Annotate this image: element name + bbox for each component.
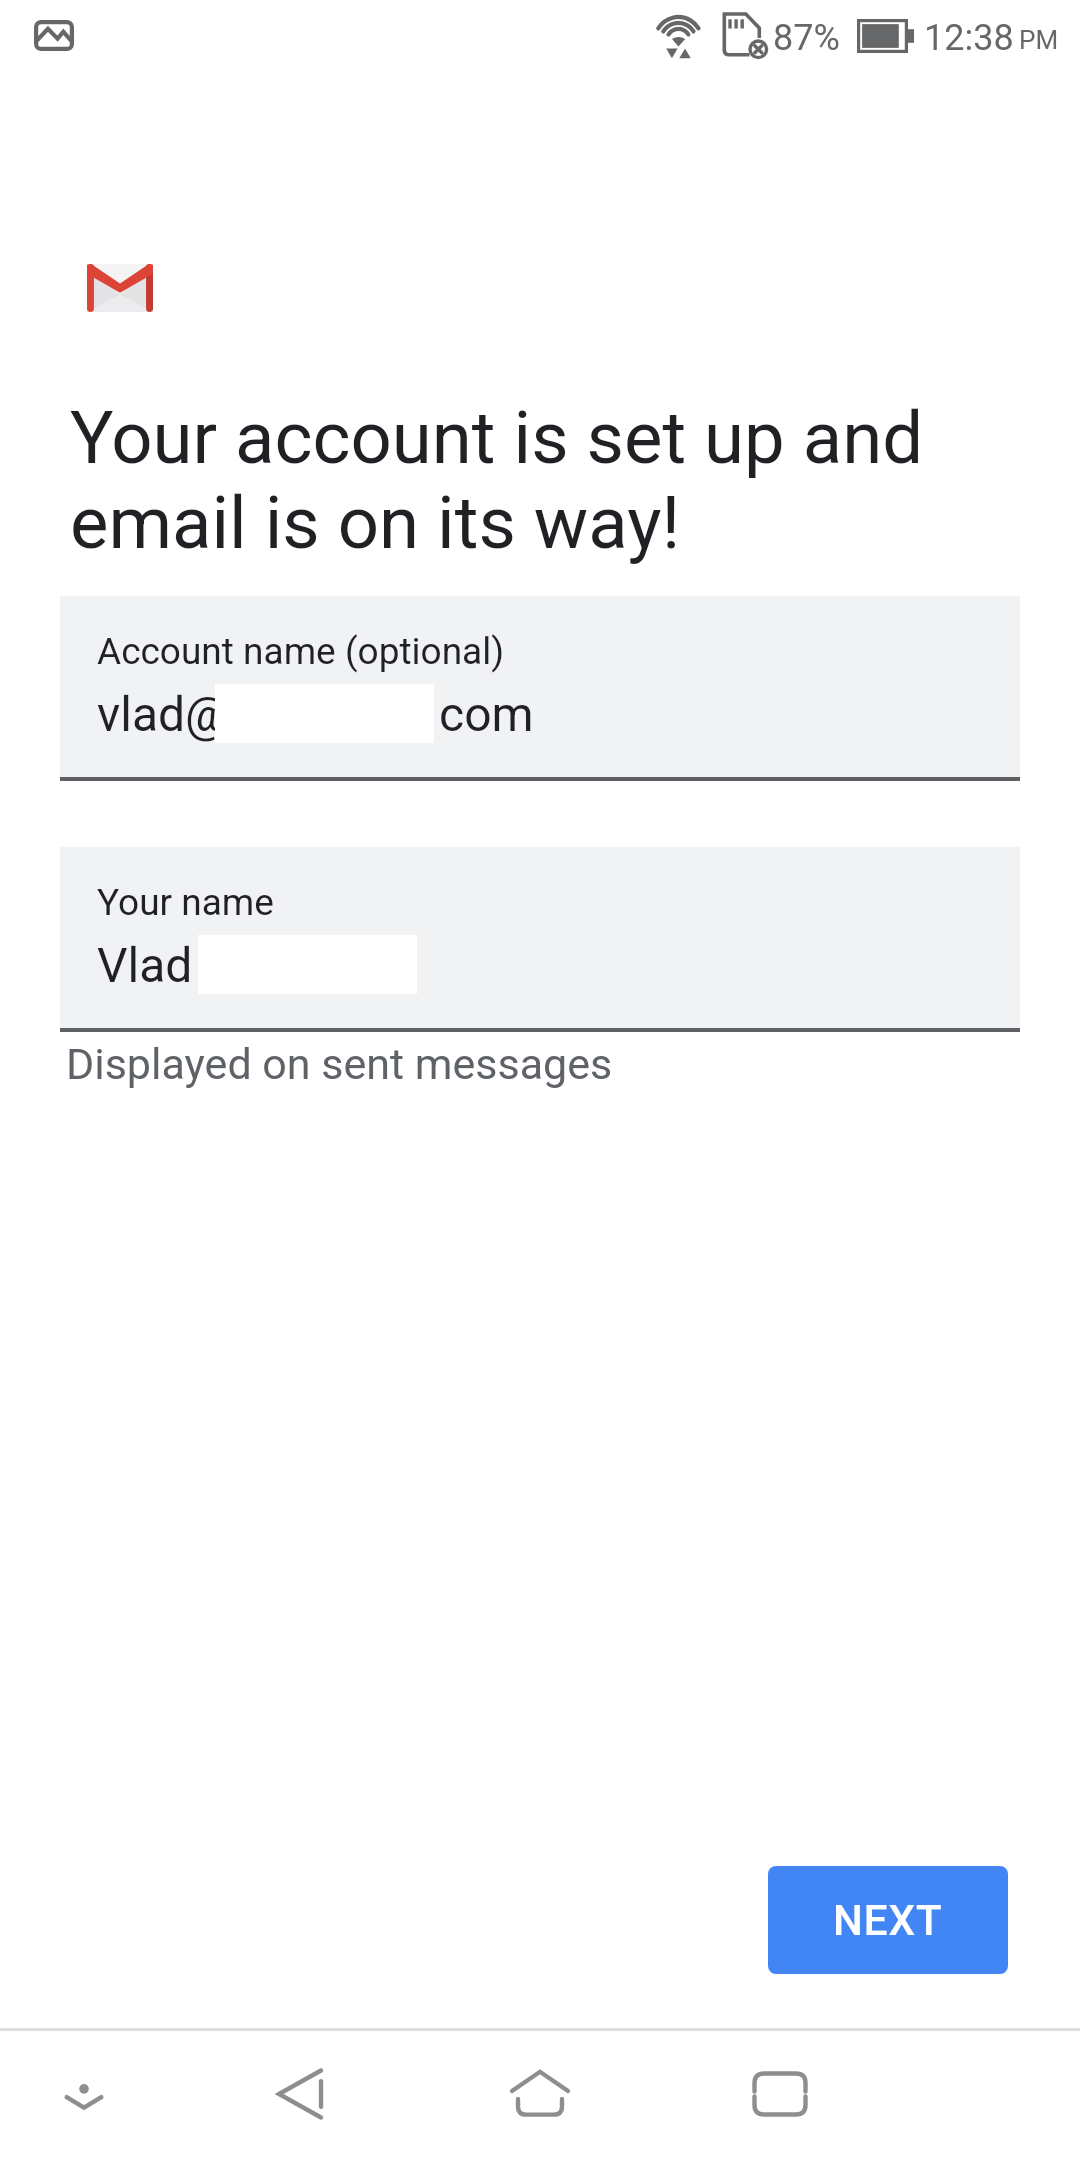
button[interactable]: Home	[480, 2034, 600, 2154]
staticText: Account name (optional)	[97, 630, 505, 673]
button[interactable]: Account name (optional)	[60, 596, 1020, 782]
staticText: Displayed on sent messages	[66, 1039, 613, 1089]
button[interactable]: Hide navigation bar	[24, 2034, 144, 2154]
staticText: Your account is set up and email is on i…	[70, 396, 1000, 565]
button[interactable]: NEXT	[768, 1866, 1008, 1974]
other: Screenshot	[34, 20, 74, 51]
staticText: PM	[1019, 25, 1059, 55]
button[interactable]: Your name	[60, 847, 1020, 1033]
staticText: vlad@	[97, 686, 229, 742]
staticText: 12:38	[924, 17, 1014, 59]
staticText: Your name	[97, 881, 274, 924]
staticText: Vlad	[97, 937, 193, 993]
button[interactable]: Recent apps	[720, 2034, 840, 2154]
staticText: com	[439, 686, 534, 742]
button[interactable]: Back	[240, 2034, 360, 2154]
staticText: 87%	[773, 17, 840, 59]
staticText: NEXT	[833, 1896, 943, 1945]
